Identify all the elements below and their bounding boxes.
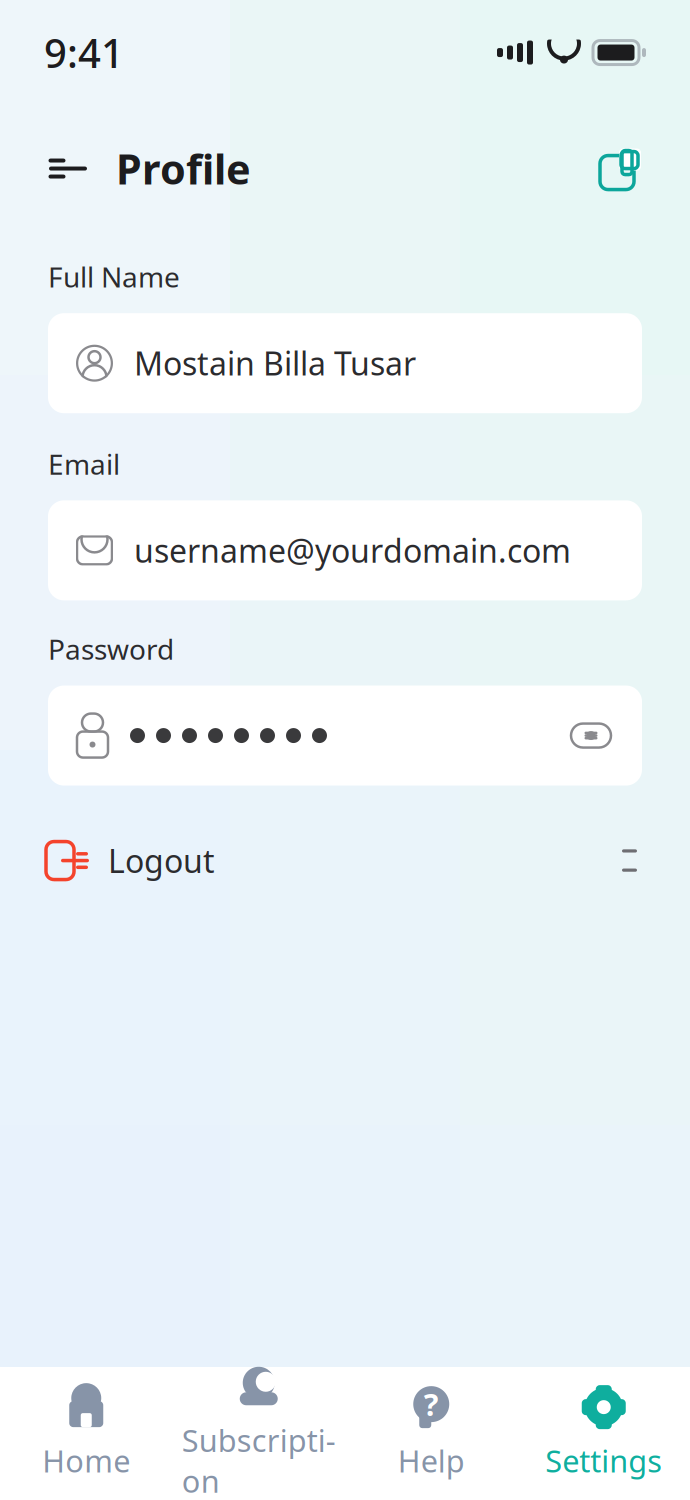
staticText: Settings — [545, 1440, 662, 1481]
staticText: Password — [48, 630, 174, 668]
button[interactable]: Logout — [0, 826, 690, 896]
staticText: Logout — [108, 839, 215, 882]
staticText: Full Name — [48, 258, 180, 295]
button[interactable]: Show password — [568, 717, 614, 755]
button[interactable]: ? — [345, 1367, 517, 1500]
button[interactable]: Back — [44, 147, 92, 191]
staticText: Subscription — [182, 1420, 336, 1500]
staticText: Mostain Billa Tusar — [134, 342, 416, 384]
button[interactable]: Home — [0, 1367, 172, 1500]
button[interactable]: Edit profile — [598, 146, 644, 192]
staticText: Email — [48, 445, 120, 482]
button[interactable]: Settings — [517, 1367, 690, 1500]
staticText: Home — [42, 1440, 130, 1481]
staticText: 9:41 — [44, 26, 124, 79]
staticText: Help — [398, 1440, 465, 1481]
staticText: Profile — [116, 141, 251, 196]
staticText: username@yourdomain.com — [134, 529, 571, 572]
button[interactable]: Subscription — [172, 1367, 345, 1500]
staticText: ? — [424, 1384, 439, 1424]
